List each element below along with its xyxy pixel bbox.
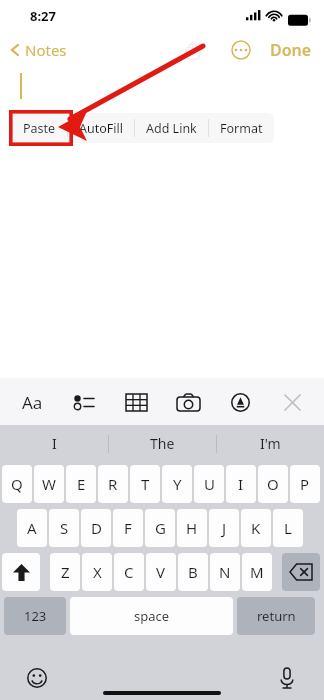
button[interactable]: Emoji (22, 663, 52, 693)
staticText: L (284, 518, 292, 538)
button[interactable]: U (194, 465, 224, 503)
button[interactable]: M (242, 553, 272, 591)
staticText: U (204, 474, 215, 494)
staticText: G (155, 518, 166, 538)
button[interactable]: space (70, 597, 233, 635)
button[interactable]: Markup (220, 382, 260, 422)
button[interactable]: Q (2, 465, 32, 503)
staticText: space (134, 607, 170, 625)
button[interactable]: B (178, 553, 208, 591)
button[interactable] (282, 553, 320, 591)
button[interactable]: O (258, 465, 288, 503)
button[interactable]: J (209, 509, 239, 547)
staticText: I (52, 434, 57, 453)
button[interactable]: Format (209, 113, 274, 143)
staticText: V (156, 562, 166, 582)
staticText: P (300, 474, 310, 494)
staticText: Q (11, 474, 23, 494)
staticText: N (219, 562, 231, 582)
staticText: A (27, 518, 37, 538)
staticText: D (91, 518, 102, 538)
button[interactable]: I'm (217, 425, 324, 462)
staticText: Aa (22, 391, 43, 414)
staticText: Paste (23, 120, 56, 137)
staticText: O (267, 474, 279, 494)
button[interactable]: F (113, 509, 143, 547)
button[interactable]: I (226, 465, 256, 503)
button[interactable]: Close keyboard (272, 382, 312, 422)
staticText: C (124, 562, 134, 582)
button[interactable]: Share (178, 36, 206, 64)
staticText: AutoFill (79, 120, 123, 137)
button[interactable]: T (130, 465, 160, 503)
button[interactable]: V (146, 553, 176, 591)
button[interactable] (2, 553, 40, 591)
staticText: Done (270, 39, 312, 61)
staticText: I'm (260, 434, 281, 453)
button[interactable]: Z (50, 553, 80, 591)
button[interactable]: S (49, 509, 79, 547)
staticText: I (238, 474, 244, 494)
button[interactable]: I (0, 425, 108, 462)
button[interactable]: E (66, 465, 96, 503)
staticText: B (188, 562, 198, 582)
button[interactable]: D (81, 509, 111, 547)
staticText: Notes (25, 40, 67, 60)
staticText: Format (220, 120, 263, 137)
button[interactable]: Dictation (272, 663, 302, 693)
button[interactable]: N (210, 553, 240, 591)
staticText: Y (173, 474, 182, 494)
button[interactable]: Paste (12, 113, 67, 143)
staticText: F (124, 518, 132, 538)
button[interactable]: Camera (168, 382, 208, 422)
button[interactable]: return (237, 597, 315, 635)
staticText: T (141, 474, 150, 494)
button[interactable]: Text format (12, 382, 52, 422)
button[interactable]: P (290, 465, 320, 503)
button[interactable]: R (98, 465, 128, 503)
staticText: H (186, 518, 198, 538)
staticText: 123 (24, 607, 47, 625)
staticText: X (93, 562, 102, 582)
staticText: M (250, 562, 264, 582)
button[interactable]: Y (162, 465, 192, 503)
staticText: J (222, 518, 227, 538)
button[interactable]: K (241, 509, 271, 547)
button[interactable]: The (109, 425, 216, 462)
button[interactable]: Done (268, 35, 314, 65)
staticText: K (251, 518, 261, 538)
staticText: return (257, 607, 296, 625)
button[interactable]: A (17, 509, 47, 547)
staticText: Add Link (146, 120, 197, 137)
button[interactable]: G (145, 509, 175, 547)
button[interactable]: More options (228, 37, 254, 63)
button[interactable]: H (177, 509, 207, 547)
staticText: W (42, 474, 56, 494)
staticText: The (150, 434, 175, 453)
button[interactable]: X (82, 553, 112, 591)
staticText: R (108, 474, 118, 494)
button[interactable]: Add Link (135, 113, 208, 143)
staticText: Z (61, 562, 70, 582)
button[interactable]: C (114, 553, 144, 591)
button[interactable]: Checklist (64, 382, 104, 422)
staticText: S (60, 518, 69, 538)
button[interactable]: Notes (8, 40, 67, 60)
button[interactable]: L (273, 509, 303, 547)
button[interactable]: 123 (4, 597, 66, 635)
button[interactable]: W (34, 465, 64, 503)
button[interactable]: Table (116, 382, 156, 422)
button[interactable]: AutoFill (68, 113, 134, 143)
staticText: 8:27 (30, 7, 56, 25)
staticText: E (77, 474, 86, 494)
